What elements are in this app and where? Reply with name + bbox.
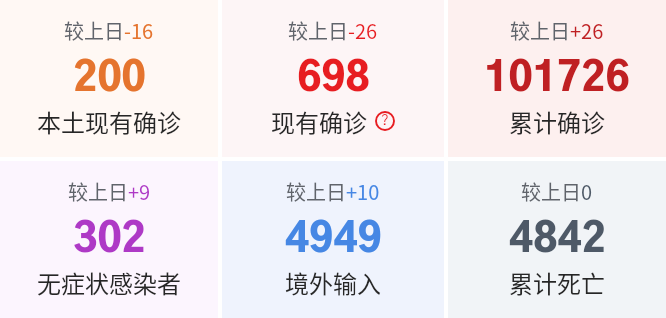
button[interactable]: 较上日+10	[222, 161, 444, 318]
staticText: 现有确诊	[271, 104, 367, 139]
button[interactable]: Help	[375, 111, 395, 131]
button[interactable]: 较上日+26	[448, 0, 666, 157]
staticText: 4842	[509, 220, 606, 260]
staticText: 较上日0	[521, 177, 593, 206]
staticText: 较上日-26	[288, 16, 378, 45]
button[interactable]: 较上日-16	[0, 0, 218, 157]
staticText: 较上日+9	[68, 177, 151, 206]
staticText: 698	[297, 59, 370, 99]
staticText: 较上日-16	[64, 16, 154, 45]
button[interactable]: 较上日+9	[0, 161, 218, 318]
button[interactable]: 较上日-26	[222, 0, 444, 157]
staticText: ?	[381, 114, 389, 128]
staticText: 4949	[285, 220, 382, 260]
staticText: 较上日+26	[510, 16, 604, 45]
staticText: 累计死亡	[509, 265, 605, 300]
staticText: 200	[73, 59, 146, 99]
staticText: 101726	[484, 59, 630, 99]
staticText: 本土现有确诊	[37, 104, 181, 139]
staticText: 较上日+10	[286, 177, 380, 206]
staticText: 境外输入	[285, 265, 381, 300]
staticText: 累计确诊	[509, 104, 605, 139]
button[interactable]: 较上日0	[448, 161, 666, 318]
staticText: 无症状感染者	[37, 265, 181, 300]
staticText: 302	[73, 220, 146, 260]
